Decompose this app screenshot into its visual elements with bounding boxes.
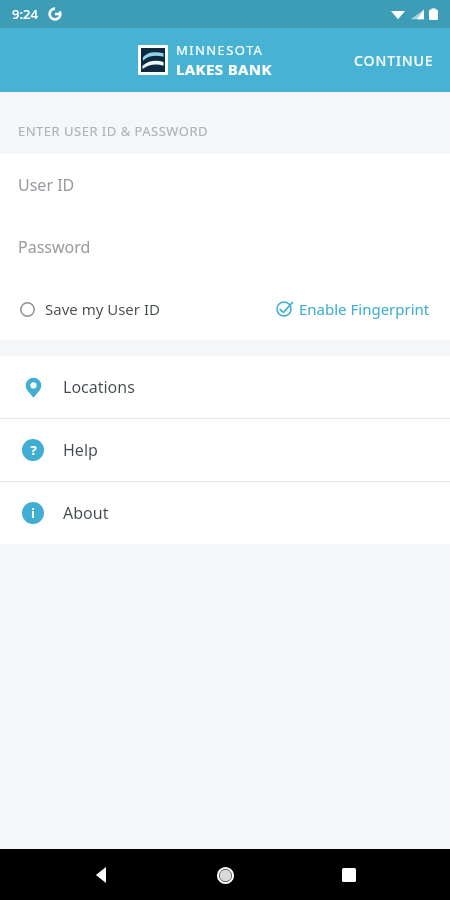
button[interactable]: Locations — [0, 356, 450, 418]
staticText: ENTER USER ID & PASSWORD — [18, 122, 209, 140]
button[interactable]: Save my User ID — [18, 293, 162, 325]
staticText: CONTINUE — [354, 51, 434, 70]
button[interactable]: Home — [203, 853, 247, 897]
staticText: About — [63, 502, 109, 524]
button[interactable]: Back — [80, 853, 124, 897]
button[interactable]: ? — [0, 419, 450, 481]
staticText: Locations — [63, 376, 135, 398]
staticText: MINNESOTA — [176, 41, 264, 59]
button[interactable]: Enable Fingerprint — [274, 293, 432, 325]
button[interactable]: i — [0, 482, 450, 544]
staticText: LAKES BANK — [176, 59, 272, 79]
button[interactable]: User ID — [0, 154, 450, 216]
staticText: ? — [30, 441, 37, 459]
staticText: Password — [18, 236, 91, 258]
staticText: i — [31, 505, 35, 521]
staticText: User ID — [18, 174, 75, 196]
button[interactable]: Recent apps — [327, 853, 371, 897]
staticText: Enable Fingerprint — [299, 299, 430, 319]
staticText: 9:24 — [12, 5, 38, 23]
staticText: Save my User ID — [45, 299, 160, 319]
button[interactable]: Password — [0, 216, 450, 278]
staticText: Help — [63, 439, 98, 461]
button[interactable]: CONTINUE — [338, 41, 450, 80]
